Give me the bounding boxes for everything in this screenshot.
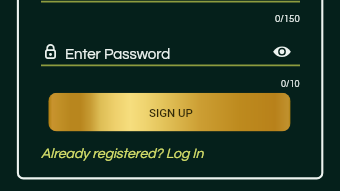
staticText: 0/150 — [275, 14, 300, 24]
button[interactable]: Already registered? Log In — [41, 147, 204, 161]
button[interactable]: Show password — [268, 40, 296, 63]
staticText: Enter Password — [65, 47, 171, 62]
staticText: SIGN UP — [149, 106, 193, 119]
staticText: 0/10 — [281, 79, 300, 88]
staticText: Already registered? Log In — [41, 147, 204, 161]
